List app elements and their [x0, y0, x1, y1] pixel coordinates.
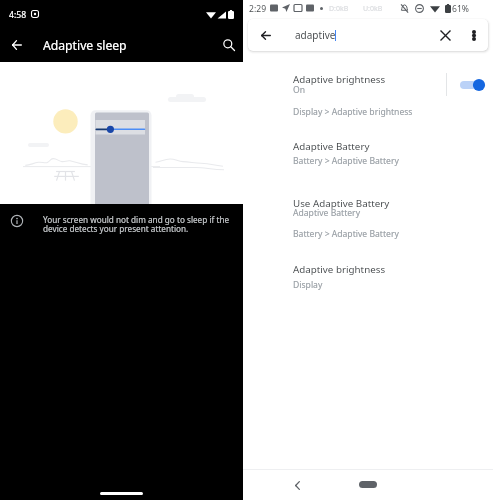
button[interactable]: Use Adaptive Battery — [293, 197, 448, 210]
button[interactable]: Adaptive Battery — [293, 140, 448, 153]
staticText: Display — [293, 279, 323, 291]
button[interactable]: Clear search — [433, 23, 457, 47]
staticText: 2:29 — [249, 3, 267, 15]
staticText: U:0kB — [363, 4, 383, 14]
staticText: Battery > Adaptive Battery — [293, 155, 399, 167]
staticText: 4:58 — [9, 9, 27, 21]
staticText: Adaptive Battery — [293, 140, 370, 153]
button[interactable]: Back — [254, 23, 278, 47]
staticText: Your screen would not dim and go to slee… — [43, 214, 233, 235]
staticText: Adaptive brightness — [293, 263, 386, 276]
staticText: Adaptive Battery — [293, 207, 361, 219]
staticText: On — [293, 84, 306, 96]
button[interactable]: Search — [217, 33, 241, 57]
staticText: Battery > Adaptive Battery — [293, 228, 399, 240]
button[interactable]: Adaptive brightness toggle — [449, 72, 491, 98]
staticText: Display > Adaptive brightness — [293, 106, 413, 118]
staticText: D:0kB — [329, 4, 349, 14]
button[interactable]: Adaptive brightness — [293, 73, 448, 86]
staticText: Adaptive brightness — [293, 73, 386, 86]
staticText: Use Adaptive Battery — [293, 197, 390, 210]
button[interactable]: Back — [248, 19, 488, 51]
staticText: adaptive — [295, 28, 336, 42]
button[interactable]: More options — [462, 23, 486, 47]
staticText: 61% — [452, 3, 469, 15]
button[interactable]: Back — [286, 474, 308, 496]
button[interactable]: Back — [5, 33, 29, 57]
staticText: Adaptive sleep — [43, 37, 127, 54]
button[interactable]: Adaptive brightness — [293, 263, 448, 276]
button[interactable]: Home — [359, 481, 377, 488]
